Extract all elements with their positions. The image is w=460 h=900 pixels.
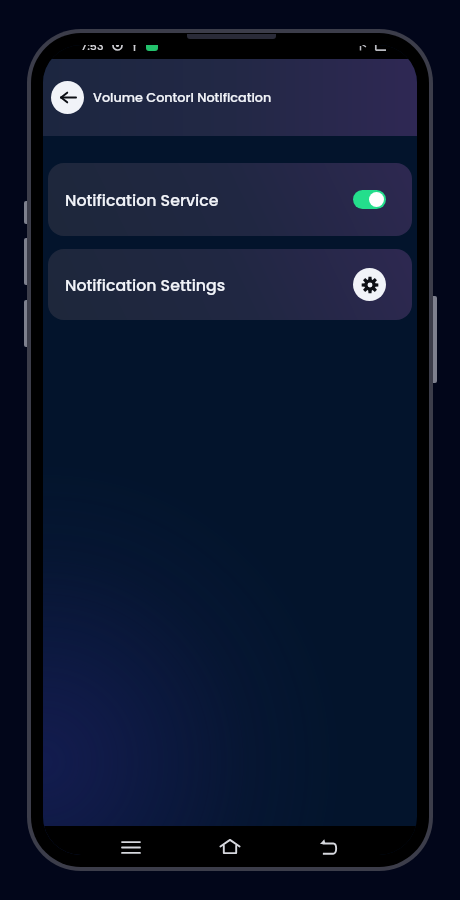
staticText: Notification Service — [65, 189, 219, 211]
button[interactable]: Recent apps — [109, 826, 153, 855]
staticText: 7:53 — [81, 45, 104, 52]
button[interactable]: Notification Settings — [48, 249, 412, 320]
staticText: Volume Contorl Notification — [93, 89, 272, 107]
staticText: Notification Settings — [65, 274, 226, 296]
button[interactable]: Settings — [353, 268, 386, 301]
button[interactable]: Notification service toggle — [353, 190, 386, 209]
button[interactable]: Home — [208, 826, 252, 855]
button[interactable]: Back — [307, 826, 351, 855]
button[interactable]: Back — [51, 81, 84, 114]
button[interactable]: Notification Service — [48, 163, 412, 236]
